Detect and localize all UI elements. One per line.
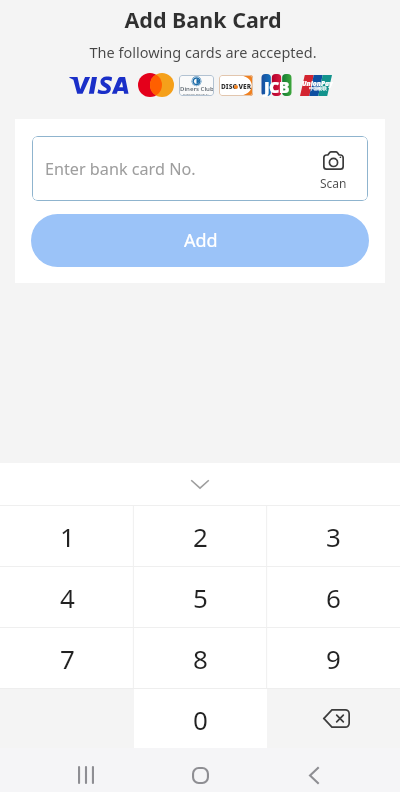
button[interactable]: 6 bbox=[267, 566, 400, 627]
staticText: Scan bbox=[320, 175, 347, 191]
staticText: Add Bank Card bbox=[3, 5, 400, 34]
staticText: 8 bbox=[193, 641, 208, 676]
staticText: Enter bank card No. bbox=[45, 158, 196, 180]
button[interactable]: Home bbox=[143, 748, 257, 792]
staticText: 2 bbox=[193, 519, 208, 554]
button[interactable]: 1 bbox=[0, 505, 134, 566]
staticText: The following cards are accepted. bbox=[3, 42, 400, 62]
button[interactable]: Backspace bbox=[267, 688, 400, 748]
staticText: 5 bbox=[193, 580, 208, 615]
button[interactable]: Recents bbox=[29, 748, 143, 792]
staticText: 3 bbox=[326, 519, 341, 554]
button[interactable]: 7 bbox=[0, 627, 134, 688]
button[interactable]: Add bbox=[31, 214, 369, 267]
staticText: DISC VER bbox=[221, 82, 252, 91]
button[interactable]: 2 bbox=[134, 505, 267, 566]
button[interactable]: 8 bbox=[134, 627, 267, 688]
staticText: 9 bbox=[326, 641, 341, 676]
staticText: 0 bbox=[193, 702, 208, 737]
button[interactable]: 5 bbox=[134, 566, 267, 627]
staticText: JCB bbox=[264, 76, 290, 98]
staticText: UnionPay bbox=[302, 79, 333, 88]
button[interactable]: 0 bbox=[134, 688, 267, 748]
button[interactable]: Scan bbox=[320, 151, 347, 191]
button[interactable]: Enter bank card No. bbox=[32, 136, 368, 201]
button[interactable]: 9 bbox=[267, 627, 400, 688]
button[interactable]: 4 bbox=[0, 566, 134, 627]
staticText: 6 bbox=[326, 580, 341, 615]
button[interactable]: 3 bbox=[267, 505, 400, 566]
staticText: 4 bbox=[60, 580, 75, 615]
staticText: 7 bbox=[60, 641, 75, 676]
staticText: Diners Club bbox=[180, 85, 214, 93]
staticText: 1 bbox=[60, 519, 75, 554]
button[interactable]: Hide keyboard bbox=[0, 463, 400, 505]
staticText: INTERNATIONAL bbox=[183, 93, 210, 96]
button[interactable]: Back bbox=[257, 748, 371, 792]
staticText: Add bbox=[184, 228, 218, 253]
staticText: 中国银联 bbox=[309, 86, 327, 92]
